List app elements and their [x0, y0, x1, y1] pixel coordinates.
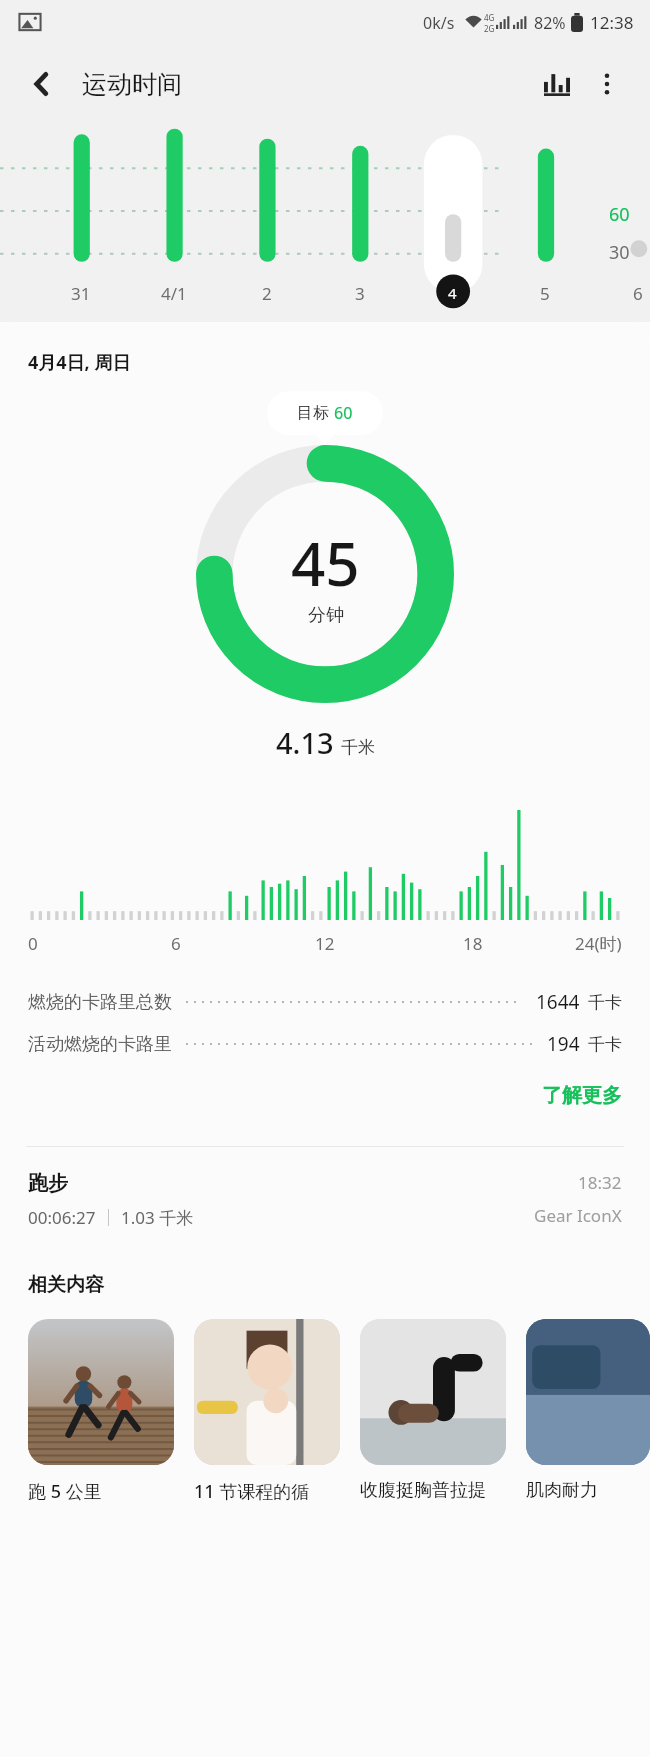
staticText: 2G: [484, 23, 495, 34]
button[interactable]: 跑 5 公里: [28, 1319, 174, 1504]
staticText: 3: [355, 282, 365, 305]
staticText: 4月4日, 周日: [28, 350, 131, 375]
staticText: 肌肉耐力: [526, 1479, 598, 1502]
staticText: 4G: [484, 12, 495, 23]
button[interactable]: 跑步: [0, 1171, 650, 1229]
staticText: 活动燃烧的卡路里: [28, 1033, 172, 1056]
staticText: 2: [262, 282, 272, 305]
staticText: 6: [171, 932, 181, 955]
button[interactable]: 11 节课程的循: [194, 1319, 340, 1504]
staticText: 60: [609, 202, 630, 227]
staticText: 6: [633, 282, 643, 305]
button[interactable]: 燃烧的卡路里总数: [0, 989, 650, 1015]
staticText: Gear IconX: [534, 1204, 622, 1227]
staticText: 千米: [341, 737, 375, 758]
staticText: 跑 5 公里: [28, 1479, 102, 1504]
staticText: 82%: [534, 12, 566, 34]
button[interactable]: 活动燃烧的卡路里: [0, 1031, 650, 1057]
staticText: 0k/s: [423, 12, 455, 34]
staticText: 1644: [536, 989, 580, 1015]
staticText: 4.13: [276, 723, 334, 762]
staticText: 收腹挺胸普拉提: [360, 1479, 486, 1502]
staticText: 燃烧的卡路里总数: [28, 991, 172, 1014]
staticText: 30: [609, 240, 630, 265]
staticText: 11 节课程的循: [194, 1479, 310, 1504]
staticText: 4: [448, 283, 457, 303]
staticText: 12: [315, 932, 335, 955]
staticText: 24(时): [575, 932, 622, 955]
staticText: 相关内容: [28, 1273, 104, 1297]
staticText: 跑步: [28, 1171, 68, 1196]
staticText: 18:32: [578, 1171, 622, 1194]
button[interactable]: 收腹挺胸普拉提: [360, 1319, 506, 1502]
staticText: 4/1: [161, 282, 187, 305]
button[interactable]: Back: [18, 60, 66, 108]
staticText: 00:06:27: [28, 1206, 96, 1229]
staticText: 分钟: [308, 604, 344, 627]
staticText: 12:38: [590, 11, 634, 34]
staticText: 0: [28, 932, 38, 955]
button[interactable]: 目标: [267, 391, 383, 435]
button[interactable]: More options: [582, 59, 632, 109]
staticText: 运动时间: [82, 69, 182, 100]
staticText: 60: [334, 402, 353, 424]
staticText: 1.03 千米: [121, 1206, 194, 1229]
staticText: 18: [463, 932, 483, 955]
button[interactable]: Statistics chart: [532, 59, 582, 109]
staticText: 目标: [297, 403, 329, 423]
staticText: 45: [291, 522, 360, 604]
staticText: 千卡: [588, 992, 622, 1013]
staticText: 千卡: [588, 1034, 622, 1055]
button[interactable]: 肌肉耐力: [526, 1319, 650, 1502]
staticText: 31: [71, 282, 91, 305]
staticText: 了解更多: [542, 1083, 622, 1108]
button[interactable]: 了解更多: [514, 1075, 650, 1116]
staticText: 5: [540, 282, 550, 305]
staticText: 194: [547, 1031, 580, 1057]
